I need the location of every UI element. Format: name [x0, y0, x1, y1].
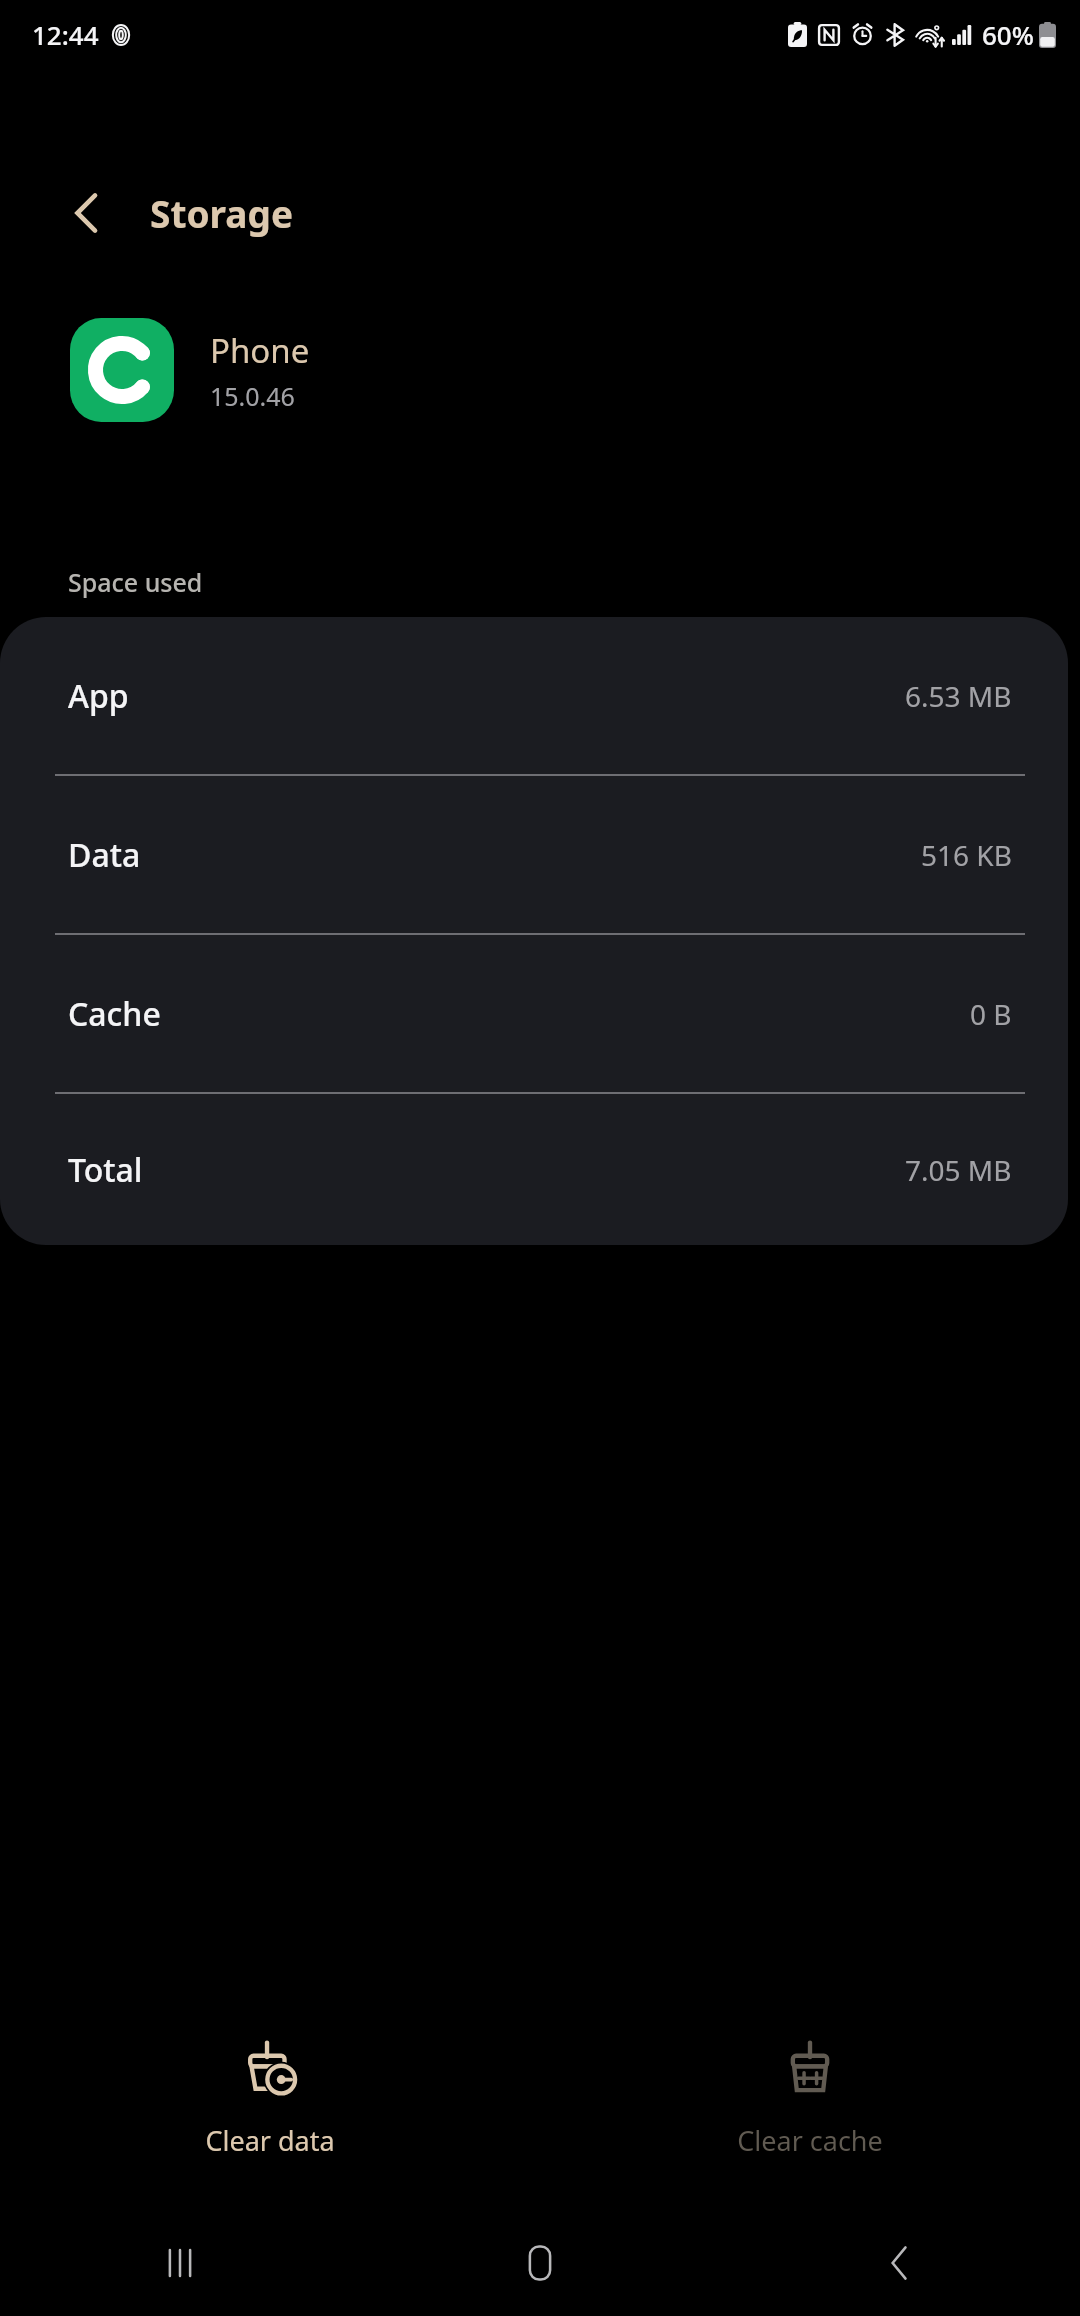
staticText: 60%	[982, 17, 1034, 52]
staticText: 12:44	[32, 17, 99, 52]
staticText: App	[68, 674, 129, 718]
staticText: Storage	[150, 188, 294, 238]
button[interactable]: Cache	[0, 935, 1068, 1092]
button[interactable]: Clear cache	[540, 2020, 1080, 2175]
staticText: 6.53 MB	[905, 677, 1012, 715]
staticText: Data	[68, 833, 141, 877]
button[interactable]: App	[0, 617, 1068, 774]
staticText: 7.05 MB	[905, 1151, 1012, 1189]
button[interactable]: Home	[360, 2210, 720, 2316]
button[interactable]: Back	[34, 168, 142, 258]
staticText: Total	[68, 1148, 143, 1192]
staticText: 516 KB	[921, 836, 1012, 874]
staticText: 15.0.46	[210, 379, 295, 413]
staticText: Cache	[68, 992, 161, 1036]
button[interactable]: Recents	[0, 2210, 360, 2316]
staticText: Phone	[210, 328, 310, 373]
staticText: Clear data	[205, 2122, 335, 2159]
staticText: Clear cache	[737, 2122, 883, 2159]
staticText: Space used	[68, 565, 203, 599]
button[interactable]: Back	[720, 2210, 1080, 2316]
staticText: 0 B	[970, 995, 1012, 1033]
button[interactable]: Clear data	[0, 2020, 540, 2175]
button[interactable]: Total	[0, 1094, 1068, 1245]
button[interactable]: Data	[0, 776, 1068, 933]
